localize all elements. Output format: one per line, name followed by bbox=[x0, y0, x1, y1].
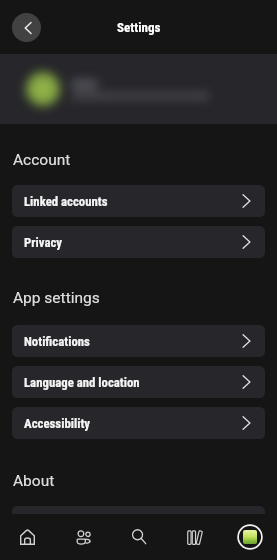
staticText: Notifications bbox=[24, 334, 90, 349]
staticText: Language and location bbox=[24, 375, 140, 390]
staticText: About bbox=[13, 472, 55, 490]
staticText: Linked accounts bbox=[24, 194, 108, 209]
button[interactable]: Linked accounts bbox=[12, 185, 265, 217]
button[interactable]: Friends bbox=[60, 514, 106, 560]
button[interactable] bbox=[0, 54, 277, 124]
button[interactable]: Back bbox=[12, 13, 41, 42]
button[interactable]: Accessibility bbox=[12, 407, 265, 439]
button[interactable]: Home bbox=[4, 514, 50, 560]
button[interactable]: Notifications bbox=[12, 325, 265, 357]
button[interactable]: Privacy bbox=[12, 226, 265, 258]
staticText: Version bbox=[24, 515, 64, 530]
staticText: Account bbox=[13, 151, 71, 169]
button[interactable]: Library bbox=[171, 514, 217, 560]
staticText: Privacy bbox=[24, 235, 62, 250]
staticText: Accessibility bbox=[24, 416, 91, 431]
staticText: App settings bbox=[13, 289, 100, 307]
staticText: Settings bbox=[117, 20, 161, 35]
button[interactable]: Language and location bbox=[12, 366, 265, 398]
button[interactable]: Search bbox=[116, 514, 162, 560]
button[interactable]: Version bbox=[12, 506, 265, 538]
button[interactable]: Profile bbox=[227, 514, 273, 560]
